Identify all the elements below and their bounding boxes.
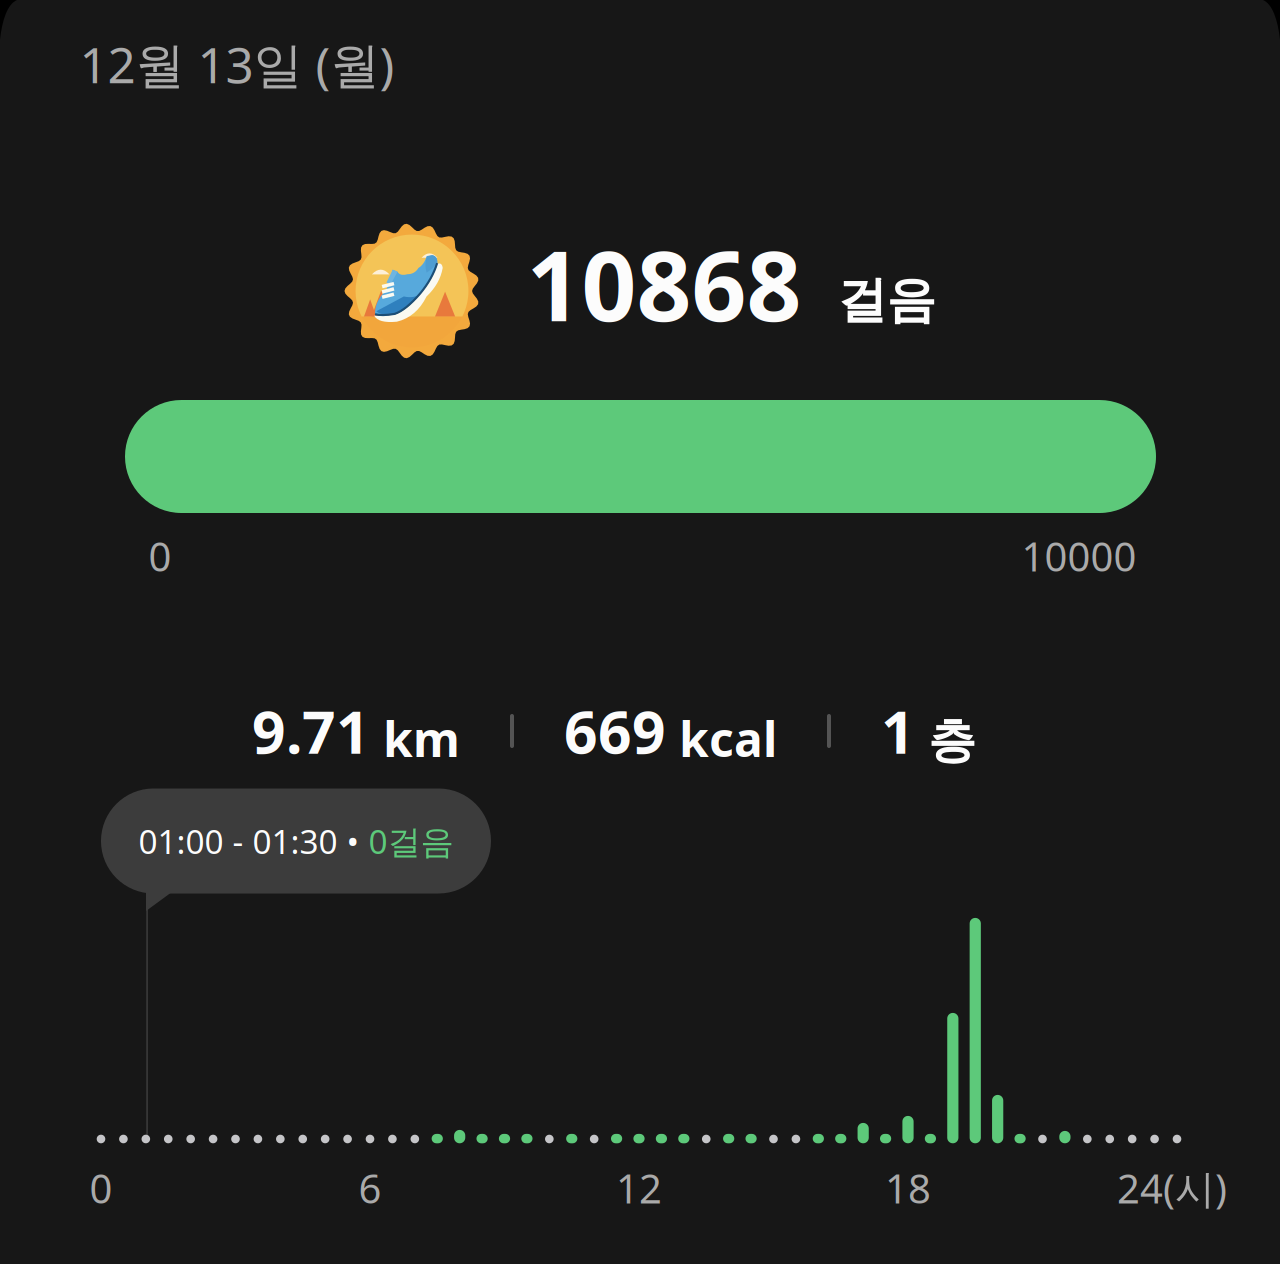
staticText: km <box>383 706 460 771</box>
staticText: 걸음 <box>837 269 935 331</box>
button[interactable]: 12월 13일 (월) <box>79 30 394 98</box>
staticText: 0걸음 <box>368 818 453 864</box>
staticText: 10868 <box>526 219 801 349</box>
staticText: 18 <box>885 1161 931 1215</box>
staticText: 24(시) <box>1117 1161 1227 1215</box>
staticText: 1 <box>881 691 915 771</box>
staticText: 9.71 <box>252 691 370 771</box>
button[interactable]: 10868 <box>526 219 935 349</box>
staticText: kcal <box>679 706 777 771</box>
staticText: 층 <box>928 710 976 771</box>
staticText: 0 <box>148 529 171 583</box>
button[interactable]: 걸음 수 배지 <box>344 223 479 358</box>
staticText: 12월 13일 (월) <box>79 30 394 98</box>
button[interactable]: 시간별 걸음 수 차트 <box>0 0 1280 1264</box>
staticText: 0 <box>89 1161 112 1215</box>
staticText: 6 <box>358 1161 381 1215</box>
staticText: 669 <box>564 691 666 771</box>
staticText: 10000 <box>1021 529 1136 583</box>
staticText: 12 <box>616 1161 662 1215</box>
staticText: 01:00 - 01:30 • <box>138 818 368 864</box>
